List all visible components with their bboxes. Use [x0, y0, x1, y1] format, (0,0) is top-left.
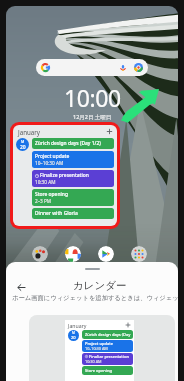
button[interactable]: Store opening — [82, 366, 133, 375]
staticText: 10:00 — [64, 82, 121, 113]
button[interactable]: Finalize presentation — [82, 353, 133, 365]
staticText: 10–10:30 AM — [35, 160, 64, 166]
button[interactable]: Project update — [32, 151, 114, 168]
staticText: Finalize presentation — [40, 172, 89, 179]
button[interactable]: App — [65, 246, 81, 262]
staticText: 10:30 AM — [85, 359, 102, 364]
staticText: 12月2日 土曜日 — [73, 113, 112, 121]
staticText: 10:30 AM — [35, 179, 56, 185]
staticText: Dinner with Gloria — [35, 210, 78, 217]
staticText: Store opening — [85, 368, 112, 373]
other: Voice search — [119, 64, 127, 72]
staticText: 20 — [20, 144, 26, 151]
staticText: 10–10:30 AM — [85, 346, 108, 351]
staticText: 2–3 PM — [35, 198, 52, 204]
staticText: January — [18, 128, 40, 136]
staticText: Project update — [85, 341, 113, 346]
staticText: M — [72, 331, 75, 335]
button[interactable]: Zürich design days (Day 1/2) — [32, 138, 114, 149]
staticText: Finalize presentation — [89, 354, 129, 359]
button[interactable]: Add event — [106, 128, 113, 135]
button[interactable]: Project update — [82, 340, 133, 352]
button[interactable]: Finalize presentation — [32, 170, 114, 187]
button[interactable]: Zürich design days (Day 1/2) — [82, 330, 133, 339]
staticText: Project update — [35, 153, 70, 160]
staticText: January — [68, 322, 87, 329]
button[interactable]: Google Search — [36, 59, 148, 76]
staticText: カレンダー — [73, 279, 127, 292]
button[interactable]: January — [29, 315, 175, 381]
other: Google Lens — [134, 63, 143, 72]
staticText: M — [21, 139, 25, 144]
button[interactable]: App — [98, 246, 114, 262]
button[interactable]: Dinner with Gloria — [32, 208, 114, 219]
staticText: Zürich design days (Day 1/2) — [85, 332, 131, 337]
button[interactable]: App — [131, 246, 147, 262]
button[interactable]: January — [13, 125, 117, 226]
staticText: ホーム画面にウィジェットを追加するときは、ウィジェット — [12, 294, 178, 302]
staticText: Store opening — [35, 191, 68, 198]
button[interactable]: App — [32, 246, 48, 262]
button[interactable]: Store opening — [32, 189, 114, 206]
staticText: 20 — [71, 335, 76, 341]
other: Google Search — [41, 63, 50, 72]
staticText: Zürich design days (Day 1/2) — [35, 140, 101, 147]
button[interactable]: Back — [13, 279, 29, 295]
